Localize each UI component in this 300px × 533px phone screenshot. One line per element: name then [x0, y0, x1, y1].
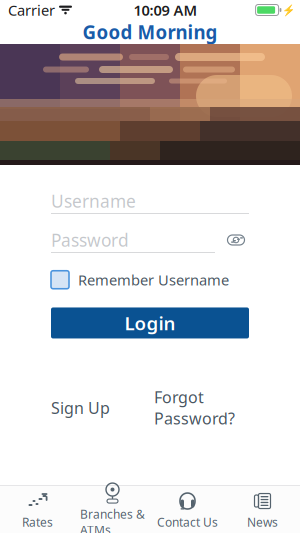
staticText: Username [51, 189, 136, 212]
staticText: Login [124, 311, 175, 335]
button[interactable]: Rates [0, 485, 75, 533]
staticText: News [247, 514, 278, 530]
staticText: Sign Up [51, 397, 110, 418]
staticText: Forgot Password? [154, 386, 235, 429]
staticText: 10:09 AM [133, 0, 197, 20]
button[interactable]: Login [51, 307, 249, 338]
staticText: ⚡ [282, 4, 295, 16]
button[interactable]: Sign Up [51, 397, 110, 418]
button[interactable]: News [225, 485, 300, 533]
button[interactable]: Contact Us [150, 485, 225, 533]
button[interactable]: Branches & ATMs [75, 477, 150, 533]
staticText: Good Morning [82, 20, 217, 44]
button[interactable]: Forgot Password? [154, 386, 235, 429]
staticText: Rates [22, 514, 53, 530]
button[interactable]: Show password [223, 229, 249, 251]
button[interactable]: Remember Username [51, 270, 249, 289]
staticText: Remember Username [78, 270, 229, 289]
staticText: Password [51, 228, 129, 251]
staticText: Carrier [8, 0, 55, 20]
staticText: Branches & ATMs [80, 506, 145, 533]
staticText: Contact Us [157, 514, 218, 530]
